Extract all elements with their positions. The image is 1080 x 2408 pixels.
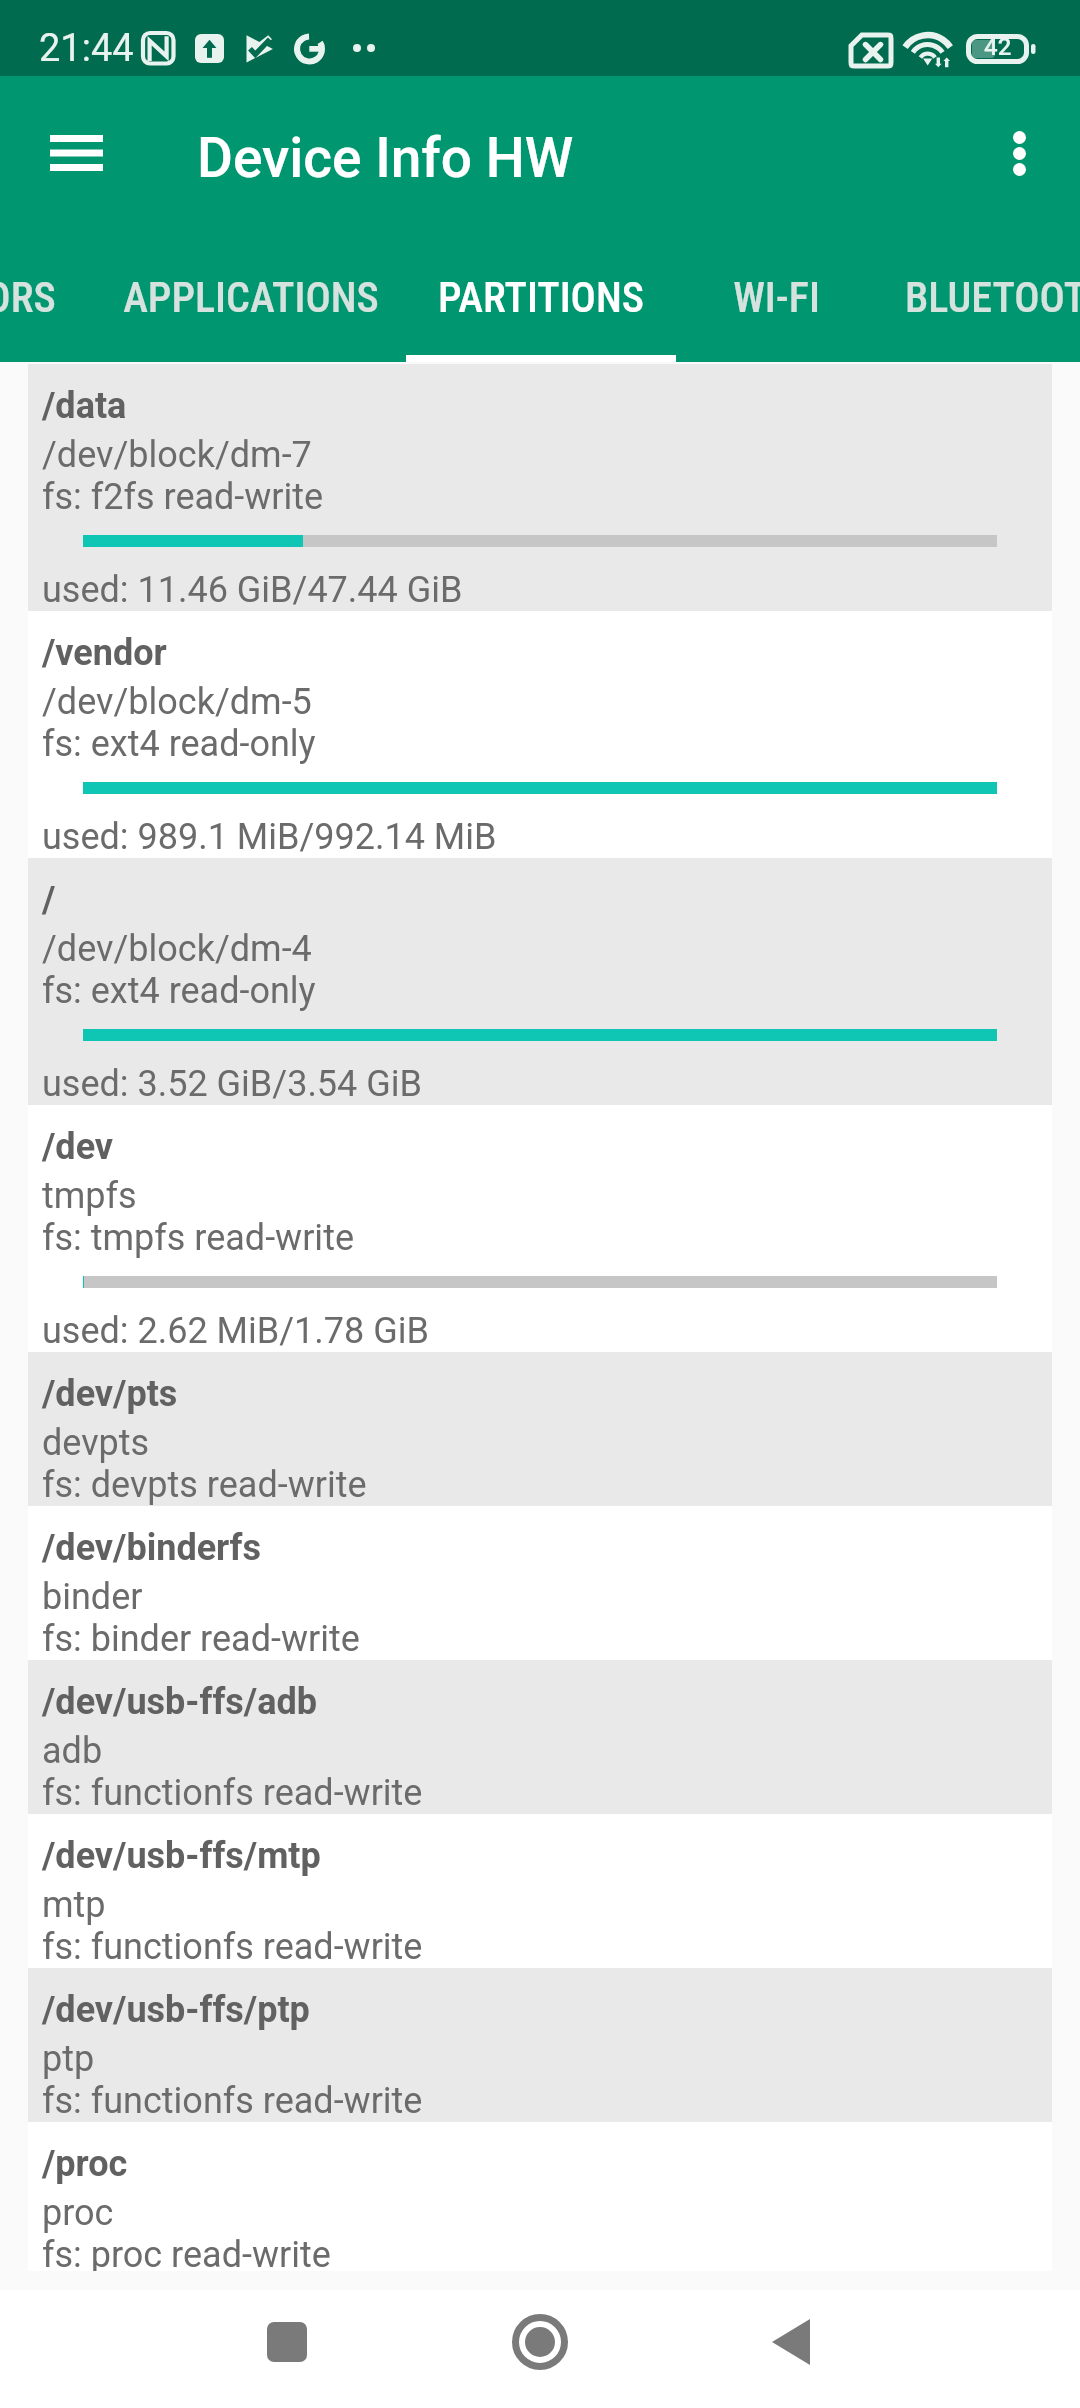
button[interactable]: /dev/pts <box>28 1352 1052 1506</box>
staticText: fs: devpts read-write <box>42 1464 367 1506</box>
staticText: / <box>42 879 56 921</box>
staticText: used: 2.62 MiB/1.78 GiB <box>42 1310 429 1352</box>
staticText: /dev/pts <box>42 1373 178 1415</box>
button[interactable]: Open navigation drawer <box>24 101 128 205</box>
button[interactable]: More options <box>967 101 1071 205</box>
staticText: tmpfs <box>42 1175 137 1217</box>
staticText: WI-FI <box>733 273 820 322</box>
staticText: fs: binder read-write <box>42 1618 360 1660</box>
staticText: PARTITIONS <box>438 273 644 322</box>
staticText: fs: ext4 read-only <box>42 970 316 1012</box>
button[interactable]: /dev <box>28 1105 1052 1352</box>
staticText: APPLICATIONS <box>123 273 379 322</box>
button[interactable]: /dev/usb-ffs/ptp <box>28 1968 1052 2122</box>
staticText: ptp <box>42 2038 95 2080</box>
staticText: fs: functionfs read-write <box>42 2080 423 2122</box>
button[interactable]: /proc <box>28 2122 1052 2271</box>
staticText: 42 <box>984 33 1012 61</box>
staticText: fs: ext4 read-only <box>42 723 316 765</box>
staticText: fs: functionfs read-write <box>42 1772 423 1814</box>
button[interactable]: / <box>28 858 1052 1105</box>
button[interactable]: Home <box>480 2283 600 2401</box>
button[interactable]: Back <box>731 2283 851 2401</box>
staticText: proc <box>42 2192 114 2234</box>
staticText: devpts <box>42 1422 150 1464</box>
button[interactable]: /dev/binderfs <box>28 1506 1052 1660</box>
staticText: fs: functionfs read-write <box>42 1926 423 1968</box>
staticText: fs: tmpfs read-write <box>42 1217 354 1259</box>
staticText: /dev/block/dm-4 <box>42 928 312 970</box>
staticText: fs: proc read-write <box>42 2234 331 2271</box>
staticText: BLUETOOTH <box>905 273 1080 322</box>
staticText: /dev/usb-ffs/ptp <box>42 1989 310 2031</box>
button[interactable]: PARTITIONS <box>406 230 676 362</box>
button[interactable]: SENSORS <box>0 230 95 362</box>
button[interactable]: Recent apps <box>227 2283 347 2401</box>
staticText: /dev/usb-ffs/adb <box>42 1681 317 1723</box>
staticText: SENSORS <box>0 273 56 322</box>
staticText: used: 3.52 GiB/3.54 GiB <box>42 1063 422 1105</box>
staticText: Device Info HW <box>197 126 574 190</box>
button[interactable]: APPLICATIONS <box>95 230 406 362</box>
staticText: /proc <box>42 2143 128 2185</box>
staticText: /dev/usb-ffs/mtp <box>42 1835 321 1877</box>
staticText: 21:44 <box>39 26 134 71</box>
staticText: /dev <box>42 1126 114 1168</box>
button[interactable]: BLUETOOTH <box>877 230 1080 362</box>
staticText: used: 989.1 MiB/992.14 MiB <box>42 816 497 858</box>
button[interactable]: /dev/usb-ffs/adb <box>28 1660 1052 1814</box>
staticText: /data <box>42 385 127 427</box>
staticText: adb <box>42 1730 103 1772</box>
staticText: binder <box>42 1576 143 1618</box>
button[interactable]: /data <box>28 364 1052 611</box>
staticText: /vendor <box>42 632 167 674</box>
staticText: /dev/block/dm-7 <box>42 434 312 476</box>
staticText: fs: f2fs read-write <box>42 476 324 518</box>
staticText: mtp <box>42 1884 106 1926</box>
staticText: /dev/binderfs <box>42 1527 261 1569</box>
button[interactable]: /dev/usb-ffs/mtp <box>28 1814 1052 1968</box>
button[interactable]: /vendor <box>28 611 1052 858</box>
staticText: used: 11.46 GiB/47.44 GiB <box>42 569 463 611</box>
staticText: /dev/block/dm-5 <box>42 681 312 723</box>
button[interactable]: WI-FI <box>676 230 877 362</box>
